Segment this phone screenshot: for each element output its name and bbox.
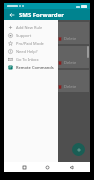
button[interactable]: Pro/Paid Mode	[4, 39, 58, 47]
button[interactable]: Recents	[20, 163, 28, 171]
staticText: Go To Inbox	[16, 57, 39, 62]
button[interactable]: Remote Commands	[4, 63, 58, 71]
staticText: Delete	[64, 36, 77, 41]
button[interactable]: Go To Inbox	[4, 55, 58, 63]
button[interactable]: Delete	[5, 70, 89, 92]
button[interactable]: Add rule	[72, 143, 85, 156]
staticText: Support	[16, 33, 32, 38]
button[interactable]: Back	[7, 10, 16, 19]
button[interactable]: Add New Rule	[4, 23, 58, 31]
staticText: Delete	[64, 60, 77, 65]
button[interactable]: Home	[43, 163, 51, 171]
staticText: Remote Commands	[16, 65, 54, 70]
staticText: Add New Rule	[16, 25, 43, 30]
button[interactable]: Delete	[5, 22, 89, 44]
button[interactable]: Need Help?	[4, 47, 58, 55]
staticText: Delete	[64, 84, 77, 89]
staticText: SMS Forwarder	[19, 11, 64, 19]
staticText: Need Help?	[16, 49, 38, 54]
button[interactable]: Delete	[5, 46, 89, 68]
button[interactable]: Support	[4, 31, 58, 39]
button[interactable]: Back	[67, 163, 75, 171]
staticText: Pro/Paid Mode	[16, 41, 44, 46]
